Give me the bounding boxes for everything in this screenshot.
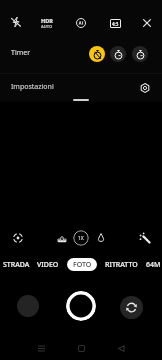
button[interactable]: FOTO	[67, 258, 97, 271]
button[interactable]: Filters	[135, 228, 155, 248]
staticText: Impostazioni	[11, 82, 54, 92]
button[interactable]: 64M	[136, 258, 162, 271]
staticText: 1X	[78, 235, 84, 242]
button[interactable]: 1X	[73, 230, 89, 246]
button[interactable]: Timer off	[89, 46, 105, 62]
button[interactable]: Scene	[52, 228, 72, 248]
button[interactable]: Switch camera	[120, 296, 143, 319]
staticText: STRADA	[3, 260, 30, 270]
button[interactable]: Home	[69, 341, 93, 355]
staticText: Timer	[11, 48, 31, 58]
staticText: VIDEO	[37, 260, 59, 270]
button[interactable]: HDR auto	[37, 13, 57, 33]
staticText: RITRATTO	[105, 260, 138, 270]
button[interactable]: Gallery	[17, 295, 39, 317]
button[interactable]: STRADA	[0, 258, 33, 271]
button[interactable]: VIDEO	[31, 258, 65, 271]
staticText: 64M	[146, 260, 161, 270]
button[interactable]: Beauty	[91, 228, 111, 248]
button[interactable]	[0, 78, 162, 98]
staticText: FOTO	[73, 260, 92, 270]
staticText: AUTO	[41, 24, 53, 29]
staticText: HDR	[41, 17, 53, 24]
button[interactable]: Recent apps	[29, 341, 53, 355]
staticText: 4:3	[112, 21, 119, 27]
button[interactable]: RITRATTO	[104, 258, 138, 271]
button[interactable]: Close	[137, 13, 157, 33]
button[interactable]: Settings	[136, 79, 154, 97]
button[interactable]: Timer 10 seconds	[132, 46, 148, 62]
button[interactable]: Take photo	[66, 291, 96, 321]
button[interactable]: Timer 3 seconds	[110, 46, 126, 62]
button[interactable]: Back	[109, 341, 133, 355]
button[interactable]: AI scene detection	[71, 13, 91, 33]
button[interactable]: Aspect ratio 4:3	[105, 13, 125, 33]
button[interactable]: Macro	[8, 228, 28, 248]
button[interactable]: Flash off	[6, 12, 26, 32]
